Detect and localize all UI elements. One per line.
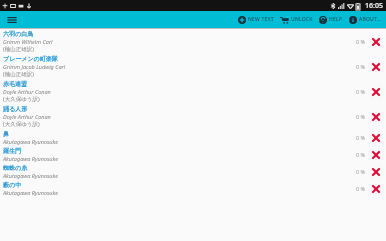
staticText: 0 % [356,113,366,120]
button[interactable]: Delete 藪の中 [369,182,383,196]
button[interactable]: Delete 羅生門 [369,148,383,162]
staticText: Doyle Arthur Conan [3,88,51,95]
button[interactable]: 踊る人形 [0,104,386,129]
staticText: 蜘蛛の糸 [3,164,28,172]
staticText: 0 % [356,185,366,192]
staticText: Akutagawa Ryunosuke [3,138,58,145]
button[interactable]: 鼻 [0,129,386,146]
button[interactable]: NEW TEXT [237,12,275,27]
button[interactable]: ブレーメンの町楽隊 [0,54,386,79]
staticText: 赤毛連盟 [3,80,27,88]
staticText: UNLOCK [291,16,313,23]
staticText: 0 % [356,88,366,95]
staticText: 六羽の白鳥 [3,30,34,38]
staticText: Grimm Wilhelm Carl [3,38,53,45]
staticText: (大久保ゆう訳) [3,95,40,103]
staticText: (楠山正雄訳) [3,70,34,78]
button[interactable]: 蜘蛛の糸 [0,163,386,180]
staticText: NEW TEXT [248,16,274,23]
button[interactable]: 羅生門 [0,146,386,163]
button[interactable]: 藪の中 [0,180,386,197]
button[interactable]: Delete 赤毛連盟 [369,85,383,99]
staticText: Akutagawa Ryunosuke [3,155,58,162]
button[interactable]: Delete 蜘蛛の糸 [369,165,383,179]
staticText: Akutagawa Ryunosuke [3,189,58,196]
staticText: (大久保ゆう訳) [3,120,40,128]
button[interactable]: Delete ブレーメンの町楽隊 [369,60,383,74]
button[interactable]: 六羽の白鳥 [0,29,386,54]
button[interactable]: 赤毛連盟 [0,79,386,104]
button[interactable]: HELP [318,12,344,27]
staticText: 踊る人形 [3,105,28,113]
staticText: 16:05 [365,1,383,11]
button[interactable]: UNLOCK [279,12,314,27]
button[interactable]: Delete 鼻 [369,131,383,145]
staticText: 羅生門 [3,147,21,155]
button[interactable]: ABOUT... [348,12,383,27]
button[interactable]: Delete 六羽の白鳥 [369,35,383,49]
button[interactable]: Delete 踊る人形 [369,110,383,124]
staticText: 0 % [356,38,366,45]
staticText: Akutagawa Ryunosuke [3,172,58,179]
staticText: Doyle Arthur Conan [3,113,51,120]
staticText: 0 % [356,168,366,175]
button[interactable]: Open navigation menu [5,13,19,27]
staticText: Grimm Jacob Ludwig Carl [3,63,66,70]
staticText: ブレーメンの町楽隊 [3,55,58,63]
staticText: 藪の中 [3,181,22,189]
staticText: 0 % [356,134,366,141]
staticText: HELP [329,16,343,23]
staticText: ABOUT... [359,16,382,23]
staticText: 0 % [356,151,366,158]
staticText: 0 % [356,63,366,70]
staticText: (楠山正雄訳) [3,45,34,53]
staticText: 鼻 [3,130,9,138]
